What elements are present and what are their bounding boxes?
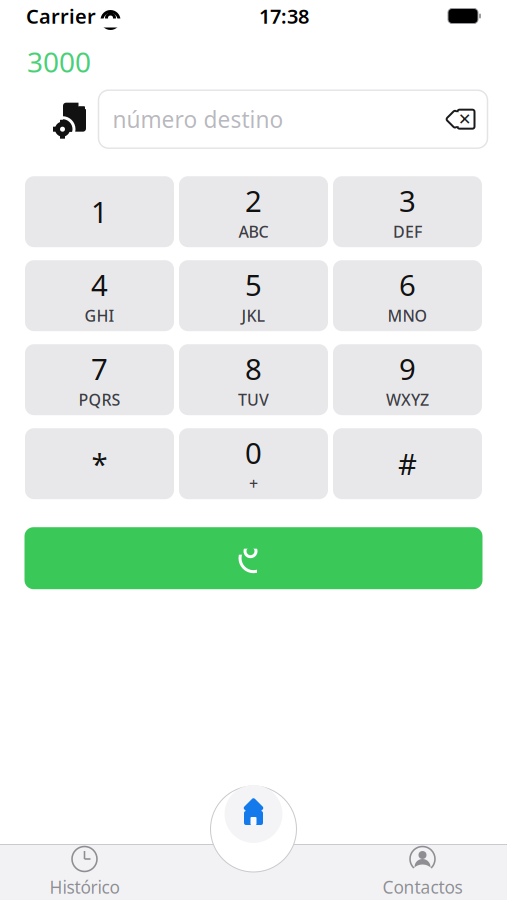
staticText: PQRS [78,389,120,410]
staticText: ABC [238,221,268,242]
staticText: 2 [245,181,262,220]
button[interactable]: Borrar [441,99,481,139]
staticText: DEF [393,221,422,242]
button[interactable]: Histórico [0,845,169,899]
staticText: 1 [91,192,108,231]
staticText: + [249,473,258,494]
button[interactable]: 1 [25,176,174,247]
button[interactable]: # [333,428,482,499]
staticText: WXYZ [386,389,429,410]
button[interactable]: Configuración [44,90,98,148]
staticText: Histórico [49,875,119,898]
staticText: 9 [399,349,416,388]
button[interactable]: Inicio [222,783,284,845]
staticText: JKL [241,305,265,326]
staticText: GHI [84,305,114,326]
staticText: 6 [399,265,416,304]
button[interactable]: 9 [333,344,482,415]
staticText: número destino [112,104,283,134]
button[interactable]: 3 [333,176,482,247]
button[interactable]: 0 [179,428,328,499]
button[interactable]: Contactos [338,845,507,899]
staticText: 7 [91,349,108,388]
staticText: 17:38 [259,3,309,29]
button[interactable]: 6 [333,260,482,331]
staticText: # [398,444,417,483]
staticText: MNO [387,305,427,326]
staticText: * [91,444,107,483]
button[interactable]: Llamar [24,527,482,589]
button[interactable]: 2 [179,176,328,247]
staticText: 0 [245,433,262,472]
staticText: Carrier [26,3,96,29]
button[interactable]: * [25,428,174,499]
staticText: 5 [245,265,262,304]
button[interactable]: 4 [25,260,174,331]
staticText: ✕ [458,110,471,128]
button[interactable]: 8 [179,344,328,415]
staticText: TUV [238,389,269,410]
staticText: 3 [399,181,416,220]
button[interactable]: 5 [179,260,328,331]
staticText: 4 [91,265,108,304]
button[interactable]: 7 [25,344,174,415]
staticText: 3000 [27,43,91,80]
staticText: 8 [245,349,262,388]
staticText: Contactos [382,875,462,898]
